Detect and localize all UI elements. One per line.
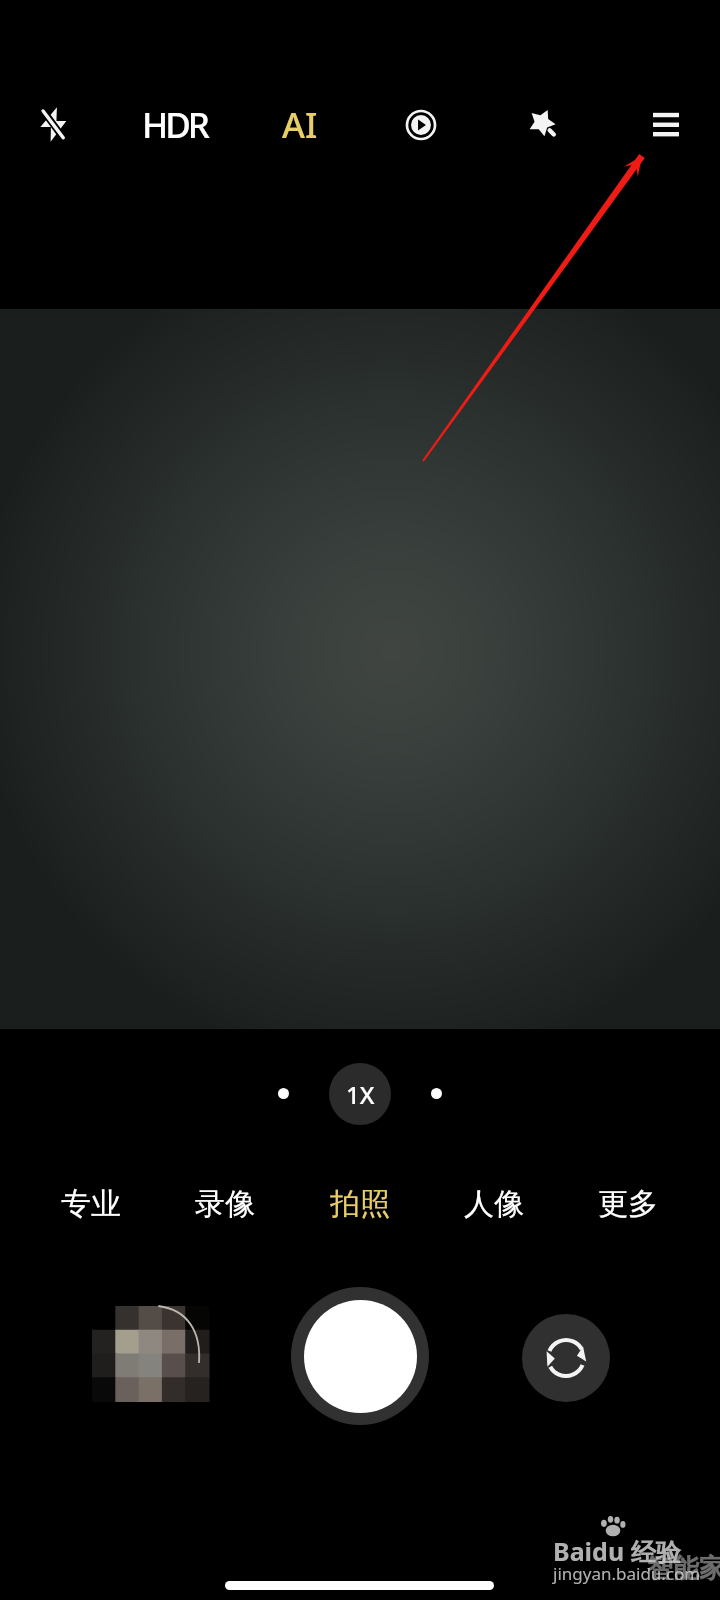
button[interactable]: 专业 — [33, 1172, 149, 1236]
staticText: 人像 — [464, 1185, 524, 1223]
button[interactable]: 录像 — [167, 1172, 283, 1236]
button[interactable]: Menu — [630, 89, 702, 161]
button[interactable]: Beauty — [507, 89, 579, 161]
button[interactable]: 人像 — [436, 1172, 552, 1236]
button[interactable]: Zoom in — [418, 1075, 454, 1111]
button[interactable]: 1X — [329, 1063, 391, 1125]
staticText: jingyan.baidu.com — [553, 1562, 701, 1585]
button[interactable]: 拍照 — [302, 1172, 418, 1236]
button[interactable]: HDR — [124, 89, 224, 161]
staticText: 智能家 — [647, 1552, 720, 1585]
staticText: 拍照 — [330, 1185, 390, 1223]
button[interactable]: 更多 — [570, 1172, 686, 1236]
staticText: 1X — [346, 1078, 375, 1111]
staticText: 专业 — [61, 1185, 121, 1223]
staticText: 更多 — [598, 1185, 658, 1223]
button[interactable]: Zoom out — [265, 1075, 301, 1111]
staticText: HDR — [142, 101, 207, 149]
button[interactable]: AI — [250, 89, 350, 161]
staticText: Baidu 经验 — [553, 1534, 681, 1568]
button[interactable]: Gallery — [92, 1306, 199, 1401]
staticText: 录像 — [195, 1185, 255, 1223]
staticText: AI — [282, 101, 318, 149]
button[interactable]: Switch camera — [522, 1314, 610, 1402]
button[interactable]: Take photo — [291, 1287, 429, 1425]
button[interactable]: Motion photo — [385, 89, 457, 161]
button[interactable]: Flash off — [17, 89, 89, 161]
